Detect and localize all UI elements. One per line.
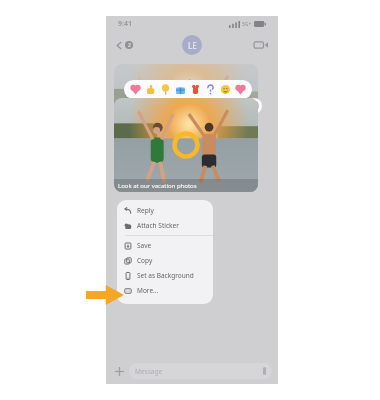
button[interactable]: Reaction <box>203 82 218 97</box>
button[interactable]: Video call <box>254 40 268 50</box>
staticText: Reply <box>137 206 154 215</box>
button[interactable]: Reaction <box>188 82 203 97</box>
button[interactable]: Reaction <box>158 82 173 97</box>
staticText: 2 <box>128 42 131 49</box>
button[interactable]: Add attachment <box>112 364 126 378</box>
button[interactable]: Reaction <box>173 82 188 97</box>
button[interactable]: Set as Background <box>117 268 213 283</box>
staticText: Copy <box>137 256 153 265</box>
staticText: 5G+ <box>242 21 252 28</box>
button[interactable]: Copy <box>117 253 213 268</box>
button[interactable]: LE <box>182 35 202 55</box>
staticText: More... <box>137 286 159 295</box>
staticText: LE <box>188 40 197 51</box>
button[interactable]: Back <box>114 39 135 51</box>
staticText: Set as Background <box>137 271 194 280</box>
staticText: Save <box>137 241 152 250</box>
button[interactable]: Message <box>129 363 272 379</box>
button[interactable]: Reaction <box>128 82 143 97</box>
button[interactable]: Reaction <box>218 82 233 97</box>
staticText: Message <box>135 367 163 376</box>
staticText: Look at our vacation photos <box>118 182 197 190</box>
button[interactable]: Stickers <box>246 98 262 114</box>
button[interactable]: Look at our vacation photos <box>114 98 258 192</box>
button[interactable]: More... <box>117 283 213 298</box>
staticText: Attach Sticker <box>137 221 179 230</box>
button[interactable]: Reaction <box>143 82 158 97</box>
button[interactable]: Reaction <box>233 82 248 97</box>
button[interactable]: Reply <box>117 203 213 218</box>
staticText: 9:41 <box>118 19 132 29</box>
other: Pointer to More <box>86 285 124 305</box>
button[interactable]: Attach Sticker <box>117 218 213 233</box>
button[interactable]: Save <box>117 238 213 253</box>
